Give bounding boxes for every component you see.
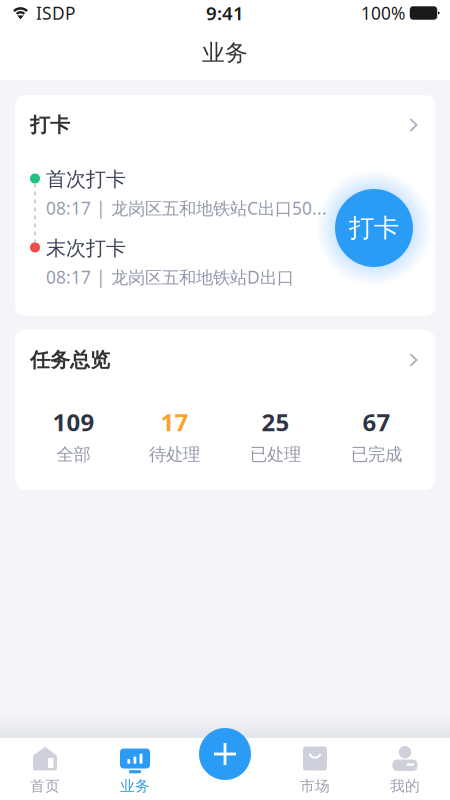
button[interactable]: 任务总览 — [15, 330, 435, 390]
staticText: 业务 — [202, 39, 248, 67]
button[interactable]: 业务 — [90, 730, 180, 800]
staticText: 9:41 — [206, 1, 244, 25]
staticText: 17 — [160, 406, 188, 438]
staticText: 08:17 | 龙岗区五和地铁站C出口50... — [46, 197, 327, 220]
staticText: 109 — [52, 406, 94, 438]
staticText: 首页 — [30, 777, 60, 795]
staticText: 我的 — [390, 777, 420, 795]
staticText: 任务总览 — [30, 348, 110, 372]
staticText: 67 — [362, 406, 390, 438]
button[interactable]: 打卡 — [316, 170, 432, 286]
staticText: ISDP — [36, 1, 75, 24]
staticText: 打卡 — [349, 212, 399, 243]
staticText: 市场 — [300, 777, 330, 795]
staticText: 打卡 — [30, 113, 70, 137]
staticText: 末次打卡 — [46, 236, 126, 261]
button[interactable]: 首页 — [0, 730, 90, 800]
staticText: 待处理 — [149, 444, 200, 465]
button[interactable]: 新建 — [199, 728, 251, 780]
staticText: 25 — [261, 406, 289, 438]
staticText: 全部 — [56, 444, 90, 465]
staticText: 首次打卡 — [46, 167, 126, 192]
staticText: 已完成 — [351, 444, 402, 465]
button[interactable]: 我的 — [360, 730, 450, 800]
button[interactable]: 打卡 — [15, 95, 435, 155]
staticText: 08:17 | 龙岗区五和地铁站D出口 — [46, 266, 294, 289]
staticText: 已处理 — [250, 444, 301, 465]
staticText: 业务 — [120, 777, 150, 795]
staticText: 100% — [361, 1, 405, 24]
button[interactable]: 市场 — [270, 730, 360, 800]
